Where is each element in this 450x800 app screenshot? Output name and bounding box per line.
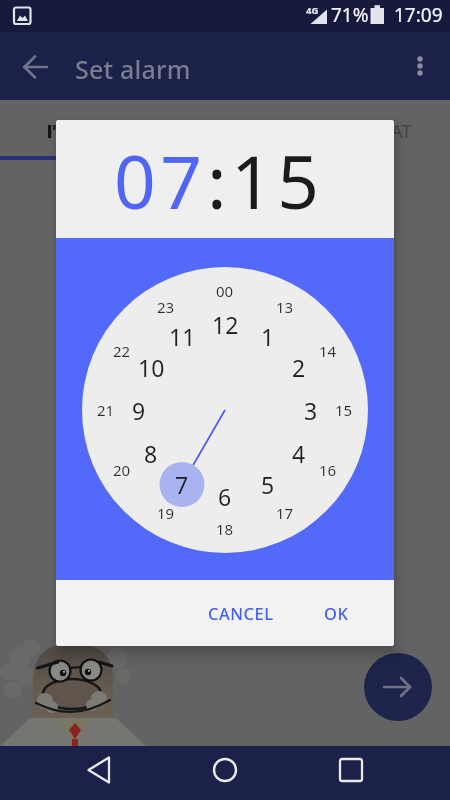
staticText: 14	[319, 341, 337, 361]
staticText: 4G	[306, 4, 319, 17]
staticText: 13	[276, 297, 294, 317]
staticText: 07	[114, 131, 207, 230]
staticText: 4	[292, 438, 306, 469]
button[interactable]	[13, 44, 59, 90]
staticText: 5	[261, 469, 275, 500]
staticText: 19	[157, 503, 175, 523]
staticText: 20	[113, 460, 131, 480]
staticText: 3	[304, 395, 318, 426]
button[interactable]	[75, 750, 125, 796]
button[interactable]: CANCEL	[196, 597, 286, 629]
button[interactable]	[325, 750, 375, 796]
staticText: 15	[335, 400, 353, 420]
staticText: Set alarm	[75, 52, 191, 86]
staticText: 23	[157, 297, 175, 317]
staticText: 16	[319, 460, 337, 480]
staticText: 11	[169, 321, 196, 352]
staticText: 9	[132, 395, 146, 426]
staticText: AT	[391, 119, 412, 144]
staticText: 8	[144, 438, 158, 469]
staticText: 17	[276, 503, 294, 523]
staticText: 6	[218, 481, 232, 512]
staticText: 18	[216, 519, 234, 539]
staticText: 12	[212, 309, 239, 340]
staticText: 71%	[331, 2, 369, 28]
staticText: 7	[175, 469, 189, 500]
staticText: OK	[324, 602, 349, 624]
staticText: 21	[97, 400, 115, 420]
staticText: 10	[138, 352, 165, 383]
staticText: CANCEL	[208, 602, 274, 624]
button[interactable]	[200, 750, 250, 796]
button[interactable]	[402, 46, 438, 88]
button[interactable]: OK	[306, 597, 366, 629]
staticText: 00	[216, 281, 234, 301]
staticText: 1	[261, 321, 275, 352]
staticText: :15	[207, 131, 324, 230]
staticText: 22	[113, 341, 131, 361]
staticText: 2	[292, 352, 306, 383]
button[interactable]	[364, 653, 432, 721]
staticText: 17:09	[394, 2, 443, 28]
